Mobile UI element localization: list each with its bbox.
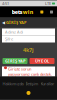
button[interactable]: Hakkımızda (2, 81, 23, 86)
button[interactable]: Menu (50, 10, 53, 13)
staticText: Kurallar (40, 81, 54, 86)
staticText: ÜYE OL (35, 58, 49, 64)
button[interactable]: ÜYE OL (29, 58, 54, 64)
staticText: İletişim (25, 81, 38, 86)
button[interactable]: Account (40, 10, 43, 13)
staticText: Girişte sorun yaşıyorsanız canlı destek. (8, 66, 52, 77)
staticText: LTE (45, 1, 51, 6)
staticText: GİRİŞ YAP (6, 20, 26, 25)
staticText: 4:51 (2, 1, 9, 6)
button[interactable]: Kurallar (40, 81, 54, 86)
staticText: ◀ (2, 20, 5, 25)
staticText: bets (12, 8, 23, 16)
staticText: GİRİŞ YAP (5, 58, 25, 64)
button[interactable]: bets (12, 8, 34, 16)
staticText: win (23, 8, 34, 16)
button[interactable]: Back (2, 19, 5, 25)
button[interactable]: GİRİŞ YAP (2, 58, 27, 64)
staticText: Şifre (5, 36, 13, 42)
staticText: 4k7j (23, 46, 34, 54)
button[interactable]: İletişim (25, 81, 38, 86)
staticText: Hakkımızda (2, 81, 23, 86)
staticText: Adınız Adı (5, 29, 23, 35)
